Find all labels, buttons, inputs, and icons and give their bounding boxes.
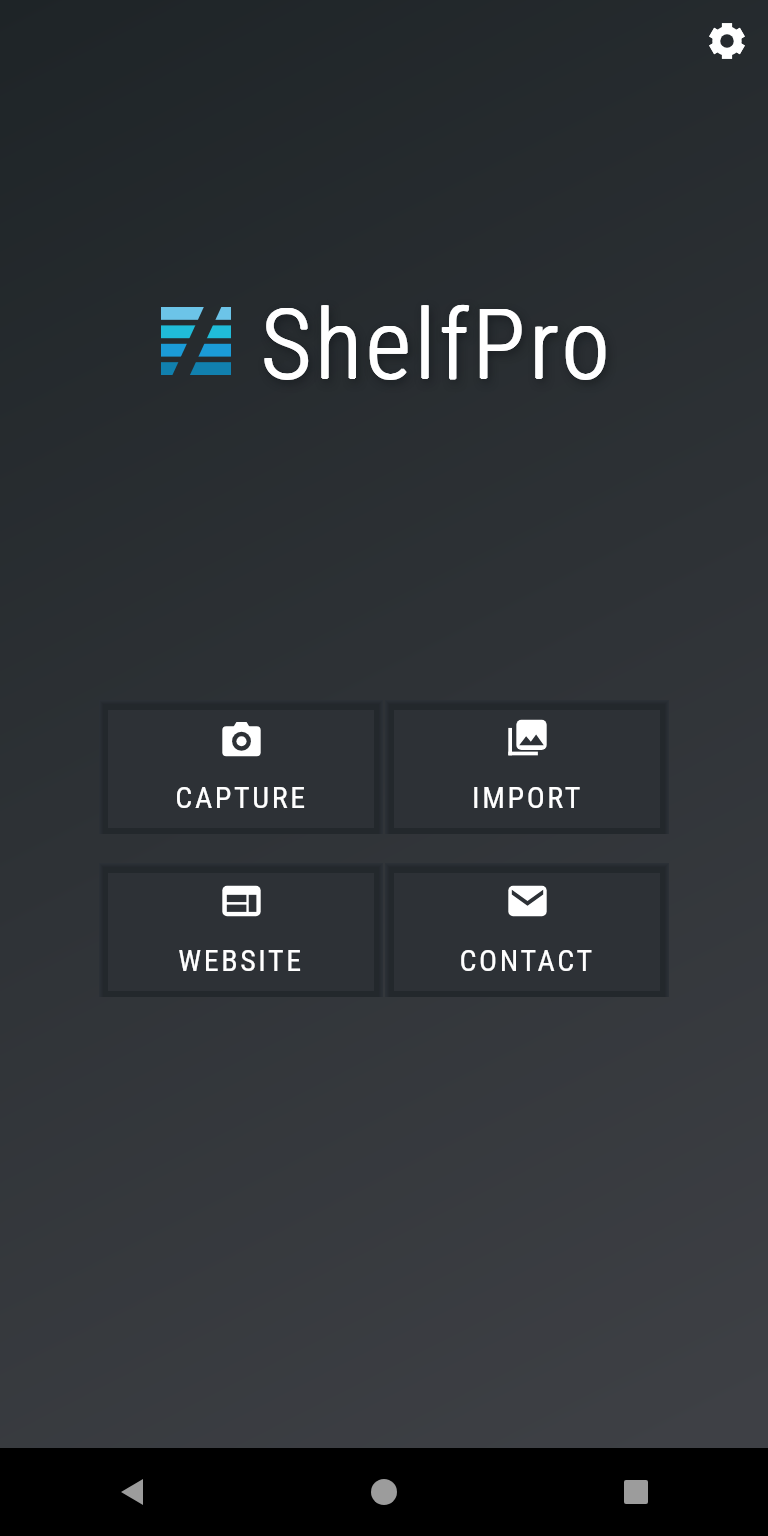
button[interactable]: WEBSITE	[99, 863, 383, 997]
staticText: CAPTURE	[175, 780, 308, 815]
staticText: ShelfPro	[261, 289, 614, 403]
staticText: CONTACT	[459, 943, 595, 978]
staticText: ShelfPro	[261, 288, 614, 402]
button[interactable]: Recents	[600, 1456, 672, 1528]
button[interactable]: CAPTURE	[99, 700, 383, 834]
staticText: IMPORT	[472, 780, 583, 815]
staticText: WEBSITE	[178, 943, 304, 978]
button[interactable]: CONTACT	[385, 863, 669, 997]
button[interactable]: IMPORT	[385, 700, 669, 834]
button[interactable]: Home	[348, 1456, 420, 1528]
button[interactable]: Settings	[693, 7, 761, 75]
staticText: ShelfPro	[262, 288, 615, 402]
button[interactable]: Back	[96, 1456, 168, 1528]
staticText: ShelfPro	[260, 288, 613, 402]
